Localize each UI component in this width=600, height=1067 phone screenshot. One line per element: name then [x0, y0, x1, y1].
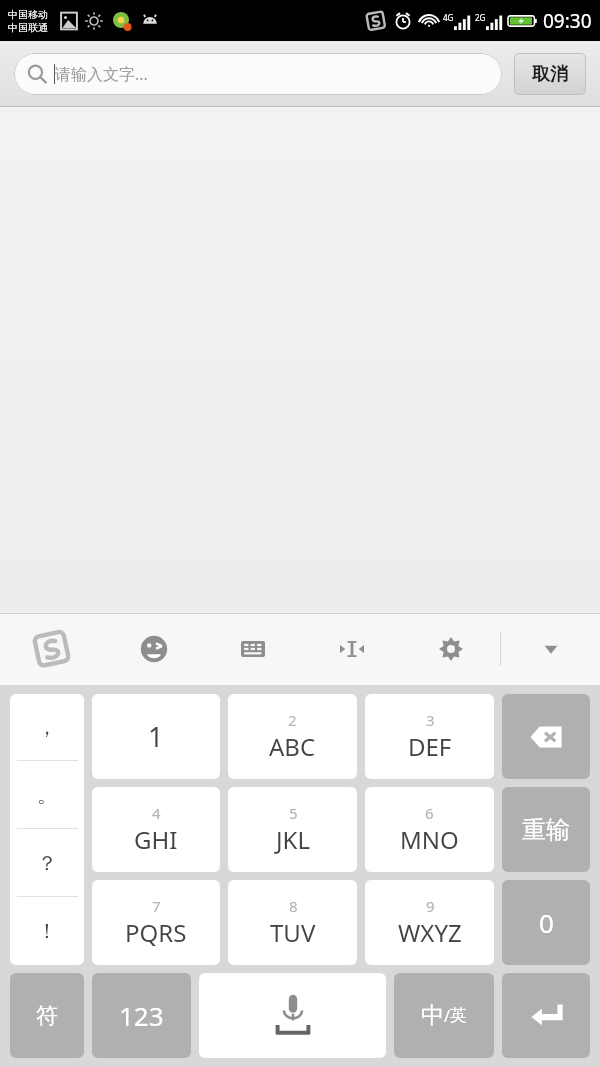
- button[interactable]: 8: [228, 880, 357, 965]
- button[interactable]: 3: [365, 694, 494, 779]
- staticText: 3: [426, 710, 435, 730]
- button[interactable]: Backspace: [502, 694, 590, 779]
- button[interactable]: 符: [10, 973, 84, 1058]
- staticText: 09:30: [543, 8, 592, 34]
- staticText: ABC: [269, 730, 316, 763]
- button[interactable]: Emoji: [104, 613, 203, 685]
- staticText: 中: [421, 1001, 444, 1030]
- staticText: DEF: [408, 730, 452, 763]
- staticText: 中国联通: [8, 21, 48, 34]
- staticText: 5: [289, 803, 298, 823]
- button[interactable]: 2: [228, 694, 357, 779]
- button[interactable]: Hide keyboard: [501, 613, 600, 685]
- staticText: TUV: [270, 916, 316, 949]
- button[interactable]: Space / voice input: [199, 973, 386, 1058]
- staticText: MNO: [400, 823, 459, 856]
- staticText: 取消: [532, 63, 568, 86]
- staticText: 2G: [475, 12, 486, 23]
- staticText: ，: [37, 715, 57, 740]
- button[interactable]: 5: [228, 787, 357, 872]
- button[interactable]: 9: [365, 880, 494, 965]
- staticText: 4: [152, 803, 161, 823]
- button[interactable]: Settings: [401, 613, 500, 685]
- button[interactable]: Keyboard layout: [203, 613, 302, 685]
- button[interactable]: Move cursor: [302, 613, 401, 685]
- staticText: ？: [37, 851, 57, 876]
- button[interactable]: 123: [92, 973, 191, 1058]
- staticText: 请输入文字...: [55, 63, 148, 85]
- staticText: 123: [119, 998, 164, 1033]
- staticText: JKL: [276, 823, 310, 856]
- staticText: 0: [539, 905, 554, 940]
- staticText: 2: [288, 710, 297, 730]
- button[interactable]: 1: [92, 694, 220, 779]
- staticText: 9: [426, 896, 435, 916]
- button[interactable]: 重输: [502, 787, 590, 872]
- button[interactable]: Sogou input: [0, 613, 104, 685]
- button[interactable]: 0: [502, 880, 590, 965]
- button[interactable]: 取消: [514, 53, 586, 95]
- staticText: 。: [37, 783, 57, 808]
- staticText: 中国移动: [8, 8, 48, 21]
- button[interactable]: ，: [10, 694, 84, 965]
- staticText: ！: [37, 919, 57, 944]
- button[interactable]: 中: [394, 973, 494, 1058]
- staticText: 1: [148, 718, 164, 755]
- staticText: 符: [36, 1002, 58, 1030]
- staticText: 8: [289, 896, 298, 916]
- staticText: GHI: [134, 823, 178, 856]
- staticText: /: [444, 1005, 450, 1027]
- staticText: 重输: [522, 815, 570, 845]
- staticText: PQRS: [125, 916, 187, 949]
- button[interactable]: 4: [92, 787, 220, 872]
- button[interactable]: 6: [365, 787, 494, 872]
- staticText: 7: [152, 896, 161, 916]
- button[interactable]: Enter: [502, 973, 590, 1058]
- button[interactable]: 7: [92, 880, 220, 965]
- staticText: WXYZ: [398, 916, 462, 949]
- staticText: 4G: [443, 12, 454, 23]
- staticText: 英: [450, 1005, 467, 1026]
- staticText: 6: [425, 803, 434, 823]
- button[interactable]: 请输入文字...: [14, 53, 502, 95]
